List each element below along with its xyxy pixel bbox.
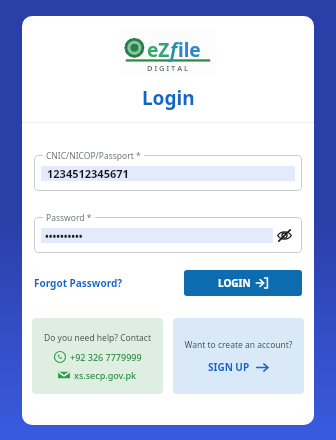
staticText: Password * bbox=[46, 212, 92, 224]
staticText: SIGN UP bbox=[208, 360, 250, 374]
button[interactable]: Want to create an account? bbox=[173, 318, 304, 394]
staticText: Forgot Password? bbox=[34, 276, 123, 290]
button[interactable]: Do you need help? Contact bbox=[32, 318, 163, 394]
staticText: D I G I T A L bbox=[147, 63, 189, 73]
staticText: Login bbox=[142, 85, 195, 111]
staticText: ile bbox=[178, 37, 201, 63]
button[interactable]: Show password bbox=[273, 224, 295, 246]
staticText: eZ bbox=[147, 37, 170, 63]
staticText: xs.secp.gov.pk bbox=[74, 369, 137, 381]
button[interactable]: 1234512345671 bbox=[34, 155, 302, 191]
staticText: +92 326 7779999 bbox=[70, 351, 142, 363]
button[interactable]: •••••••••• bbox=[34, 217, 302, 253]
staticText: 1234512345671 bbox=[47, 166, 129, 181]
staticText: LOGIN bbox=[218, 276, 251, 290]
staticText: CNIC/NICOP/Passport * bbox=[46, 150, 141, 162]
staticText: Do you need help? Contact bbox=[44, 332, 151, 344]
button[interactable]: LOGIN bbox=[184, 270, 302, 296]
staticText: •••••••••• bbox=[45, 229, 83, 243]
staticText: Want to create an account? bbox=[184, 339, 293, 351]
staticText: f bbox=[170, 37, 178, 63]
button[interactable]: Forgot Password? bbox=[34, 272, 123, 294]
